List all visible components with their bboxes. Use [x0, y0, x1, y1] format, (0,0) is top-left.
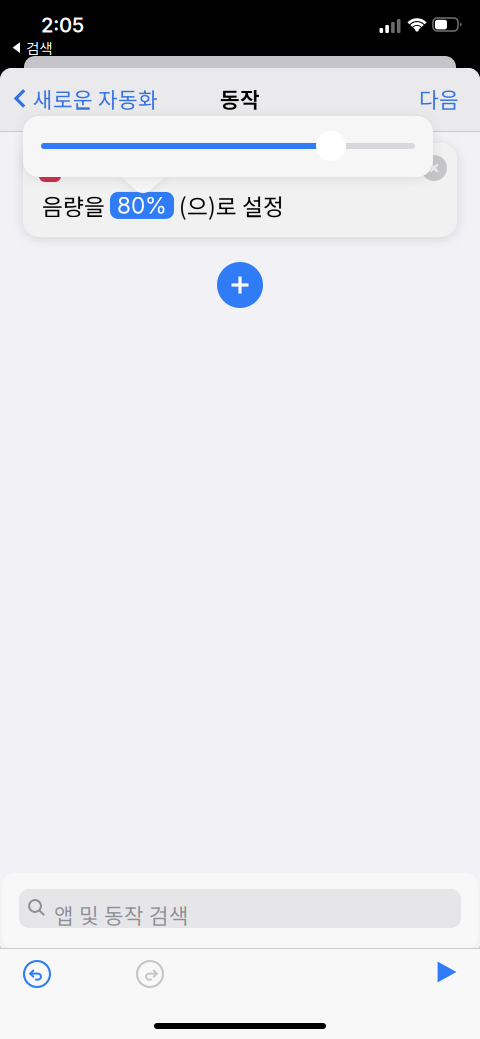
- button[interactable]: 검색: [8, 34, 56, 61]
- staticText: 앱 및 동작 검색: [54, 899, 189, 930]
- staticText: 새로운 자동화: [33, 83, 158, 114]
- staticText: 동작: [220, 83, 260, 114]
- staticText: 검색: [26, 37, 52, 58]
- button[interactable]: 새로운 자동화: [10, 76, 162, 121]
- button[interactable]: 다음: [413, 76, 465, 121]
- staticText: 다음: [419, 83, 459, 114]
- button[interactable]: 실행 취소: [17, 954, 57, 994]
- button[interactable]: 동작 삭제: [421, 155, 447, 181]
- staticText: 80%: [117, 192, 167, 219]
- staticText: 2:05: [41, 13, 84, 37]
- button[interactable]: 앱 및 동작 검색: [19, 889, 461, 928]
- button[interactable]: 단축어 실행: [428, 952, 466, 992]
- staticText: (으)로 설정: [174, 189, 284, 222]
- button[interactable]: 다시 실행: [130, 954, 170, 994]
- button[interactable]: 동작 추가: [217, 262, 263, 308]
- staticText: 음량을: [42, 189, 110, 222]
